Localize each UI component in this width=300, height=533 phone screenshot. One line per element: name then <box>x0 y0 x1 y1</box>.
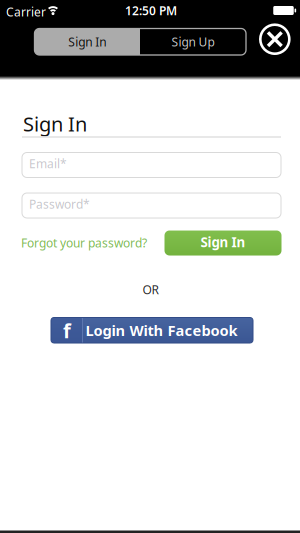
staticText: Sign Up <box>171 34 214 50</box>
button[interactable]: Close <box>256 20 294 58</box>
button[interactable]: Forgot your password? <box>21 235 147 251</box>
button[interactable]: Sign In <box>164 230 281 255</box>
button[interactable]: f <box>51 317 253 343</box>
staticText: Sign In <box>68 34 106 50</box>
button[interactable]: Sign In <box>34 28 140 55</box>
staticText: Sign In <box>200 233 245 251</box>
staticText: 12:50 PM <box>125 2 177 18</box>
staticText: OR <box>142 281 158 297</box>
staticText: Carrier <box>6 4 46 20</box>
staticText: Email* <box>29 155 67 171</box>
staticText: f <box>63 317 71 344</box>
button[interactable]: Password* <box>22 193 281 218</box>
staticText: Sign In <box>23 110 87 137</box>
staticText: Login With Facebook <box>85 320 237 340</box>
button[interactable]: Sign Up <box>140 28 246 55</box>
staticText: Forgot your password? <box>21 235 147 251</box>
staticText: Password* <box>29 196 90 212</box>
button[interactable]: Email* <box>22 152 281 177</box>
